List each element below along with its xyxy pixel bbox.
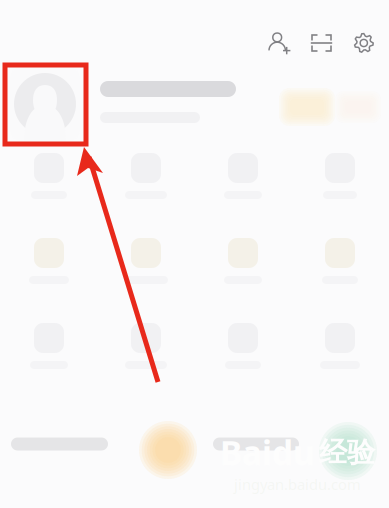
button[interactable]: Profile xyxy=(0,65,389,143)
staticText: jingyan.baidu.com xyxy=(234,474,361,494)
button[interactable]: Settings xyxy=(343,21,385,65)
button[interactable]: Service xyxy=(291,143,388,209)
button[interactable]: Service xyxy=(0,143,97,209)
button[interactable]: Promotion xyxy=(197,415,319,473)
button[interactable]: Service xyxy=(194,313,291,379)
button[interactable]: Service xyxy=(97,143,194,209)
button[interactable]: Service xyxy=(0,313,97,379)
staticText: Baidu xyxy=(220,430,315,475)
button[interactable]: Service xyxy=(194,228,291,294)
button[interactable]: Service xyxy=(194,143,291,209)
button[interactable]: Service xyxy=(291,228,388,294)
button[interactable]: Service xyxy=(97,228,194,294)
button[interactable]: Promotion xyxy=(0,415,139,473)
button[interactable]: Service xyxy=(0,228,97,294)
button[interactable]: Service xyxy=(291,313,388,379)
button[interactable]: Scan code xyxy=(301,21,343,65)
button[interactable]: Service xyxy=(97,313,194,379)
button[interactable]: Add friend xyxy=(259,21,301,65)
staticText: 经验 xyxy=(319,435,375,470)
